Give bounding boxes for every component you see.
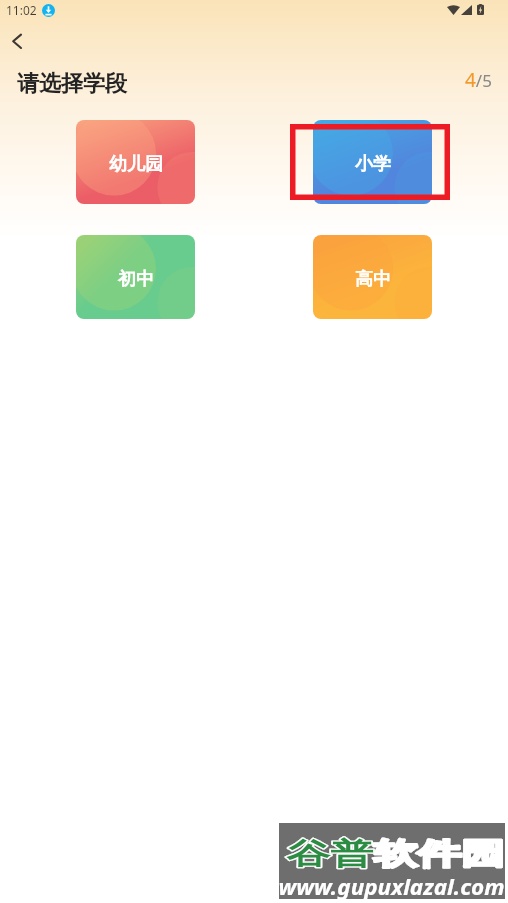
staticText: 幼儿园 (109, 153, 163, 176)
staticText: 初中 (118, 268, 154, 291)
staticText: 请选择学段 (17, 70, 127, 98)
staticText: 4/5 (465, 67, 492, 93)
staticText: 11:02 (6, 2, 37, 18)
button[interactable]: 初中 (76, 235, 195, 319)
button[interactable]: 幼儿园 (76, 120, 195, 204)
staticText: 谷普软件园 (286, 836, 505, 873)
button[interactable]: 高中 (313, 235, 432, 319)
staticText: www.gupuxlazal.com (279, 873, 505, 901)
staticText: 谷普软件园 (286, 836, 505, 873)
staticText: 小学 (355, 153, 391, 176)
staticText: 高中 (355, 268, 391, 291)
button[interactable]: 小学 (313, 120, 432, 204)
button[interactable]: Back (0, 24, 40, 58)
